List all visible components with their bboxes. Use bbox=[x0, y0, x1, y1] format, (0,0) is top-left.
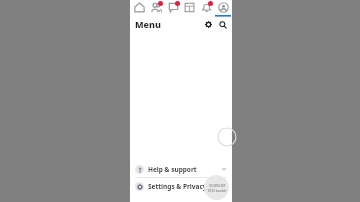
button[interactable]: Messages bbox=[165, 0, 181, 17]
button[interactable]: Friends bbox=[148, 0, 164, 17]
button[interactable]: Menu bbox=[215, 0, 231, 17]
staticText: Help & support bbox=[148, 165, 197, 174]
staticText: Settings & Privacy bbox=[148, 182, 207, 191]
button[interactable]: Settings bbox=[203, 19, 214, 30]
button[interactable]: Notifications bbox=[198, 0, 214, 17]
button[interactable]: Marketplace bbox=[181, 0, 197, 17]
staticText: SCHRLIST bbox=[209, 183, 226, 188]
button[interactable]: Search bbox=[217, 19, 228, 30]
button[interactable]: Help & support bbox=[130, 161, 232, 177]
button[interactable]: Settings & Privacy bbox=[130, 178, 232, 194]
button[interactable]: Home bbox=[131, 0, 147, 17]
staticText: Menu bbox=[135, 18, 161, 30]
staticText: 1X13 tumblr bbox=[207, 189, 227, 193]
